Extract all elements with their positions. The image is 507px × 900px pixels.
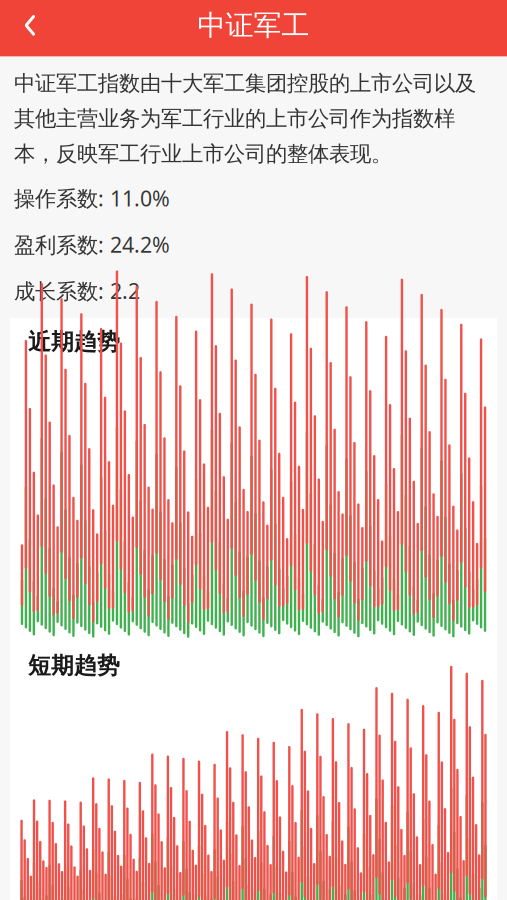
staticText: 操作系数: 11.0%	[14, 184, 170, 212]
staticText: 盈利系数: 24.2%	[14, 230, 170, 259]
button[interactable]: Back	[8, 3, 52, 47]
staticText: 中证军工	[197, 8, 309, 43]
staticText: 短期趋势	[28, 652, 120, 680]
staticText: 近期趋势	[28, 328, 120, 356]
staticText: 成长系数: 2.2	[14, 277, 140, 305]
staticText: 中证军工指数由十大军工集团控股的上市公司以及其他主营业务为军工行业的上市公司作为…	[14, 70, 476, 167]
